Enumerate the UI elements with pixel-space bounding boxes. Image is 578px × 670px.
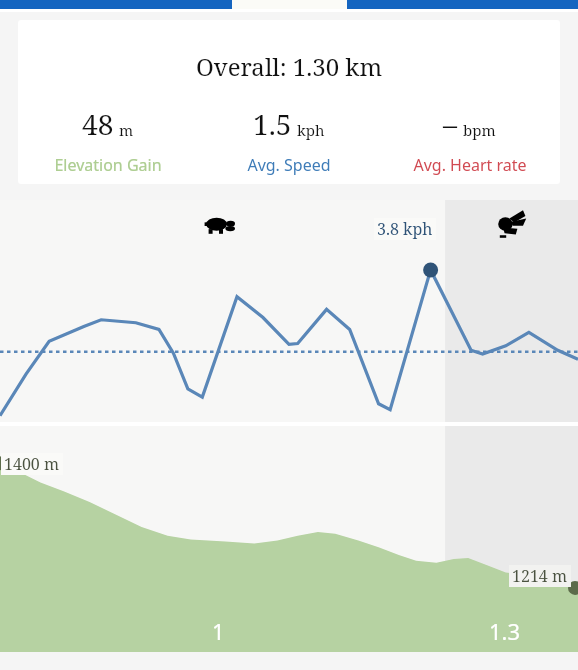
staticText: Avg. Heart rate [413,154,527,176]
button[interactable]: Fastest speed [491,209,531,241]
staticText: 1400 m [4,453,60,475]
button[interactable]: Slowest speed [203,213,243,239]
staticText: 1 [212,616,225,646]
staticText: Avg. Speed [247,154,331,176]
staticText: Overall: 1.30 km [196,50,383,83]
staticText: 3.8 kph [377,218,433,240]
staticText: kph [297,120,325,140]
staticText: m [119,120,134,140]
staticText: Elevation Gain [54,154,162,176]
button[interactable]: Overall: 1.30 km [18,20,560,184]
staticText: – [443,105,458,143]
button[interactable]: 1.5 [198,105,379,176]
button[interactable]: 48 [18,105,198,176]
staticText: 1.5 [253,105,292,143]
button[interactable]: – [379,105,560,176]
staticText: 1.3 [489,616,521,646]
staticText: bpm [463,120,496,140]
staticText: 48 [82,105,114,143]
staticText: 1214 m [512,565,568,587]
